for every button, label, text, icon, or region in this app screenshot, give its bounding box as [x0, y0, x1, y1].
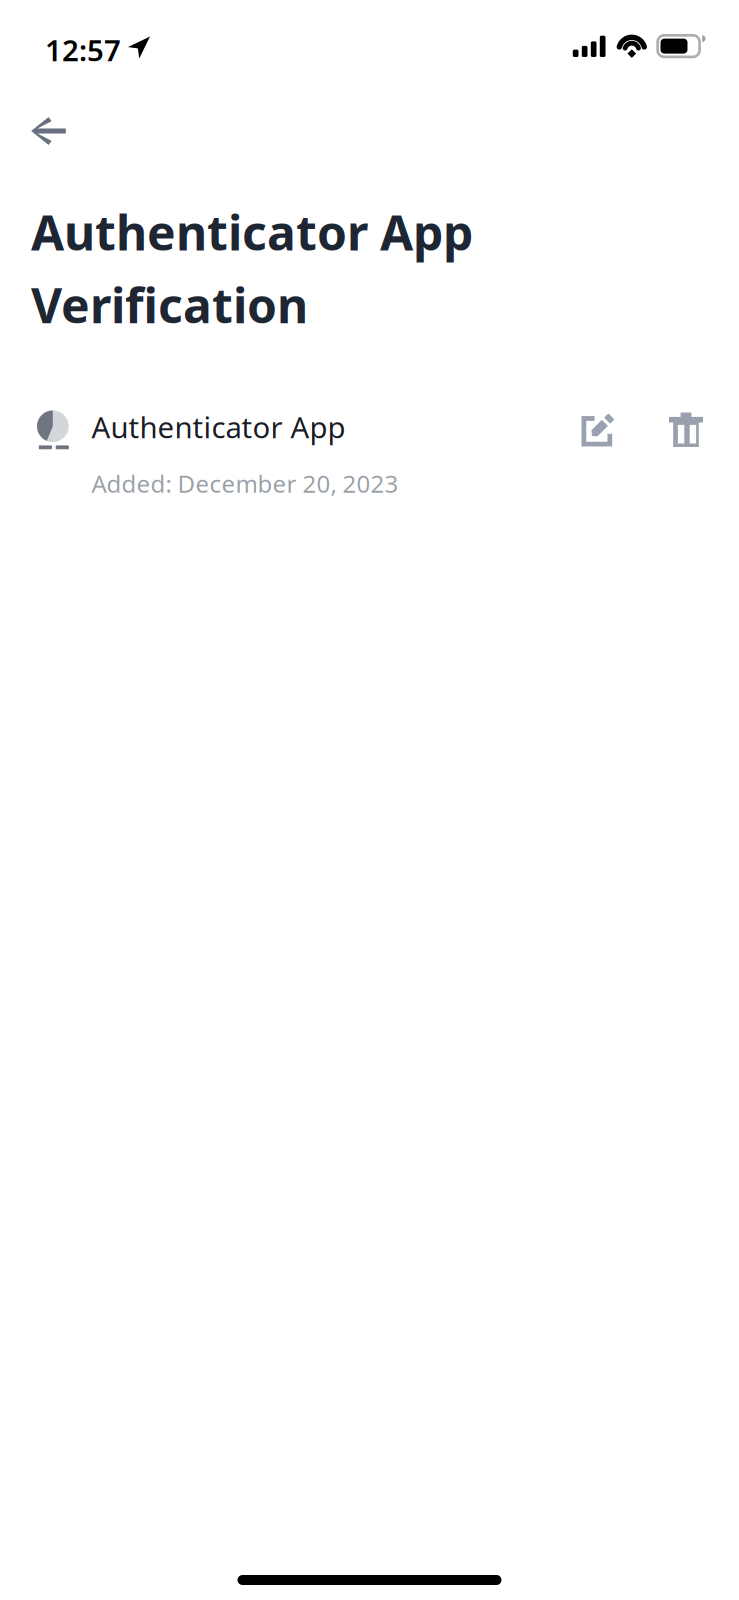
staticText: Added: December 20, 2023	[91, 467, 398, 499]
button[interactable]: Delete	[657, 407, 715, 453]
button[interactable]: Back	[0, 96, 94, 164]
button[interactable]: Edit	[567, 407, 627, 455]
staticText: Authenticator App	[91, 407, 345, 446]
staticText: 12:57	[45, 30, 121, 69]
staticText: Verification	[31, 273, 308, 336]
staticText: Authenticator App	[31, 200, 473, 264]
